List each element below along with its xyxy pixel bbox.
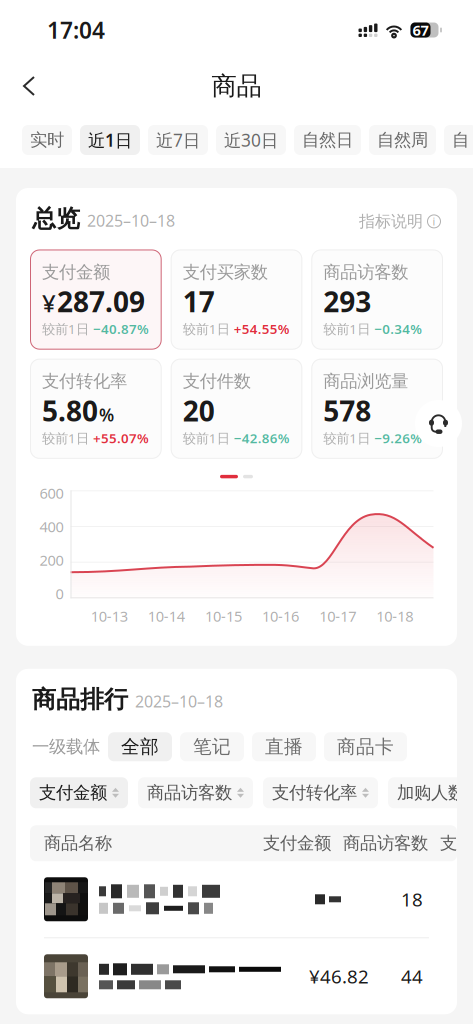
button[interactable]: 18	[16, 861, 457, 937]
staticText: 较前1日	[183, 429, 230, 447]
staticText: 支付金额	[39, 782, 107, 803]
staticText: ¥46.82	[309, 964, 369, 989]
staticText: 10-14	[148, 606, 185, 626]
button[interactable]: 近1日	[80, 125, 140, 155]
staticText: 自然日	[302, 129, 353, 151]
staticText: 自然周	[377, 129, 428, 151]
staticText: 较前1日	[183, 320, 230, 338]
staticText: 商品卡	[337, 735, 394, 758]
staticText: %	[99, 403, 114, 426]
staticText: 10-16	[262, 606, 299, 626]
button[interactable]: 支付件数	[171, 359, 302, 459]
staticText: 商品访客数	[147, 782, 232, 803]
button[interactable]: 支付金额	[30, 777, 128, 808]
button[interactable]: 客服	[415, 400, 462, 447]
staticText: 287.09	[57, 283, 145, 320]
staticText: 商品排行	[32, 685, 128, 714]
staticText: 一级载体	[32, 736, 100, 757]
staticText: −40.87%	[93, 320, 149, 338]
button[interactable]: 商品浏览量	[311, 359, 443, 459]
staticText: 200	[39, 550, 63, 570]
staticText: 支付转化率	[272, 782, 357, 803]
staticText: 600	[39, 483, 63, 503]
staticText: 总览	[32, 204, 80, 233]
staticText: 商品浏览量	[323, 371, 408, 392]
staticText: 实时	[30, 129, 64, 151]
staticText: −9.26%	[374, 429, 422, 447]
staticText: +55.07%	[93, 429, 149, 447]
button[interactable]: 实时	[22, 125, 72, 155]
button[interactable]: 返回	[0, 67, 48, 105]
staticText: 笔记	[193, 735, 231, 758]
staticText: 近1日	[88, 128, 132, 151]
button[interactable]: 支付转化率	[263, 777, 378, 808]
staticText: 17:04	[47, 15, 105, 45]
staticText: 支付买家数	[183, 261, 268, 283]
staticText: 较前1日	[42, 429, 89, 447]
staticText: 近7日	[156, 128, 200, 151]
button[interactable]: 自	[444, 125, 473, 155]
staticText: 加购人数	[397, 782, 465, 803]
staticText: 较前1日	[323, 429, 370, 447]
button[interactable]: 全部	[108, 732, 172, 761]
staticText: 2025–10–18	[135, 691, 223, 712]
staticText: 支付金额	[42, 261, 110, 283]
staticText: −0.34%	[374, 320, 422, 338]
button[interactable]: 加购人数	[388, 777, 473, 808]
staticText: 0	[55, 584, 63, 603]
staticText: 17	[183, 283, 215, 320]
staticText: 商品	[211, 70, 261, 101]
staticText: 10-17	[319, 606, 356, 626]
staticText: 商品名称	[44, 833, 112, 854]
button[interactable]: 近7日	[148, 125, 208, 155]
staticText: 10-18	[376, 606, 413, 626]
staticText: 支付金额	[263, 833, 331, 854]
staticText: 293	[323, 283, 371, 320]
staticText: +54.55%	[234, 320, 290, 338]
staticText: i	[432, 214, 435, 228]
staticText: ¥	[42, 287, 56, 319]
button[interactable]: 自然周	[369, 125, 436, 155]
staticText: 400	[39, 517, 63, 536]
staticText: 商品访客数	[323, 261, 408, 283]
staticText: 10-15	[205, 606, 242, 626]
button[interactable]: 支付金额	[30, 249, 162, 350]
staticText: 10-13	[91, 606, 128, 626]
button[interactable]: ¥46.82	[16, 938, 457, 1014]
staticText: 支付件数	[183, 371, 251, 392]
staticText: 18	[401, 887, 423, 912]
button[interactable]: 自然日	[294, 125, 361, 155]
button[interactable]: 商品访客数	[311, 249, 443, 350]
staticText: 较前1日	[323, 320, 370, 338]
button[interactable]: 支付转化率	[30, 359, 162, 459]
button[interactable]: 支付买家数	[171, 249, 302, 350]
button[interactable]: 指标说明	[359, 212, 441, 231]
staticText: 5.80	[42, 392, 98, 429]
staticText: 直播	[265, 735, 303, 758]
staticText: −42.86%	[234, 429, 290, 447]
staticText: 20	[183, 392, 215, 429]
staticText: 2025–10–18	[87, 210, 175, 231]
staticText: 近30日	[224, 128, 278, 151]
staticText: 支	[440, 833, 457, 854]
staticText: 全部	[121, 735, 159, 758]
button[interactable]: 笔记	[180, 732, 244, 761]
staticText: 44	[401, 964, 423, 989]
button[interactable]: 商品访客数	[138, 777, 253, 808]
staticText: 自	[452, 129, 469, 151]
staticText: 67	[412, 20, 428, 40]
staticText: 578	[323, 392, 371, 429]
staticText: 支付转化率	[42, 371, 127, 392]
button[interactable]: 商品卡	[324, 732, 407, 761]
staticText: 较前1日	[42, 320, 89, 338]
staticText: 指标说明	[359, 212, 423, 231]
button[interactable]: 直播	[252, 732, 316, 761]
staticText: 商品访客数	[343, 833, 428, 854]
button[interactable]: 近30日	[216, 125, 286, 155]
